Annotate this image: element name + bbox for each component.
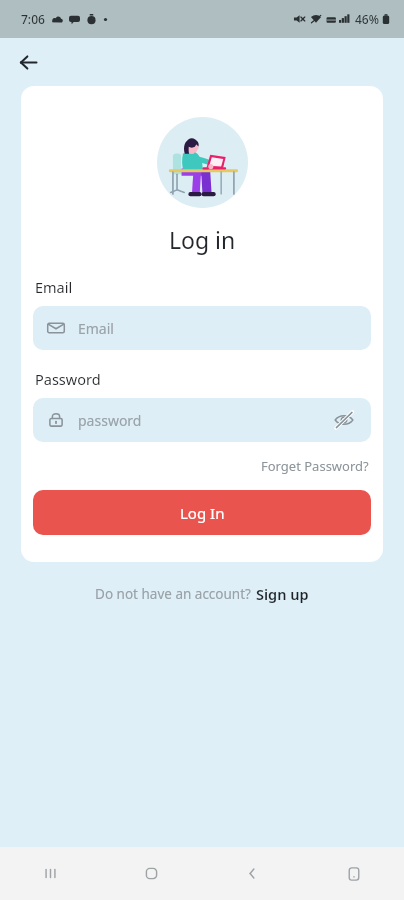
staticText: Do not have an account? — [95, 585, 251, 603]
staticText: Email — [78, 319, 114, 338]
staticText: password — [78, 411, 142, 430]
staticText: Log In — [180, 503, 225, 523]
button[interactable]: Back — [13, 47, 44, 78]
button[interactable]: Back — [202, 847, 303, 900]
button[interactable]: Log In — [33, 490, 371, 535]
staticText: 46% — [355, 11, 379, 27]
button[interactable]: Recent apps — [0, 847, 101, 900]
button[interactable]: Forget Password? — [259, 455, 371, 477]
button[interactable]: password — [33, 398, 371, 442]
staticText: Log in — [169, 224, 236, 255]
staticText: Sign up — [256, 584, 309, 604]
button[interactable]: Show password — [331, 407, 357, 433]
button[interactable]: Sign up — [256, 584, 309, 604]
staticText: 7:06 — [21, 11, 45, 27]
button[interactable]: Email — [33, 306, 371, 350]
button[interactable]: Keyboard — [303, 847, 404, 900]
staticText: Password — [35, 369, 101, 389]
staticText: Email — [35, 277, 73, 297]
button[interactable]: Home — [101, 847, 202, 900]
staticText: Forget Password? — [261, 457, 369, 475]
